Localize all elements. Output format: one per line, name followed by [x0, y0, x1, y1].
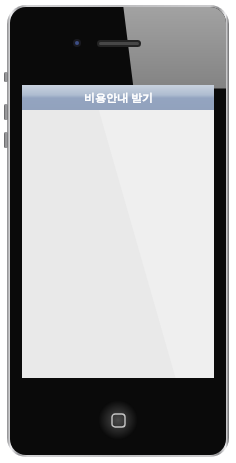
button[interactable]: Home — [98, 400, 138, 440]
button[interactable]: Side button — [4, 72, 8, 82]
staticText: 비용안내 받기 — [84, 90, 153, 105]
button[interactable]: Side button — [4, 104, 8, 120]
button[interactable]: 비용안내 받기 — [22, 85, 214, 110]
button[interactable]: Side button — [4, 132, 8, 148]
